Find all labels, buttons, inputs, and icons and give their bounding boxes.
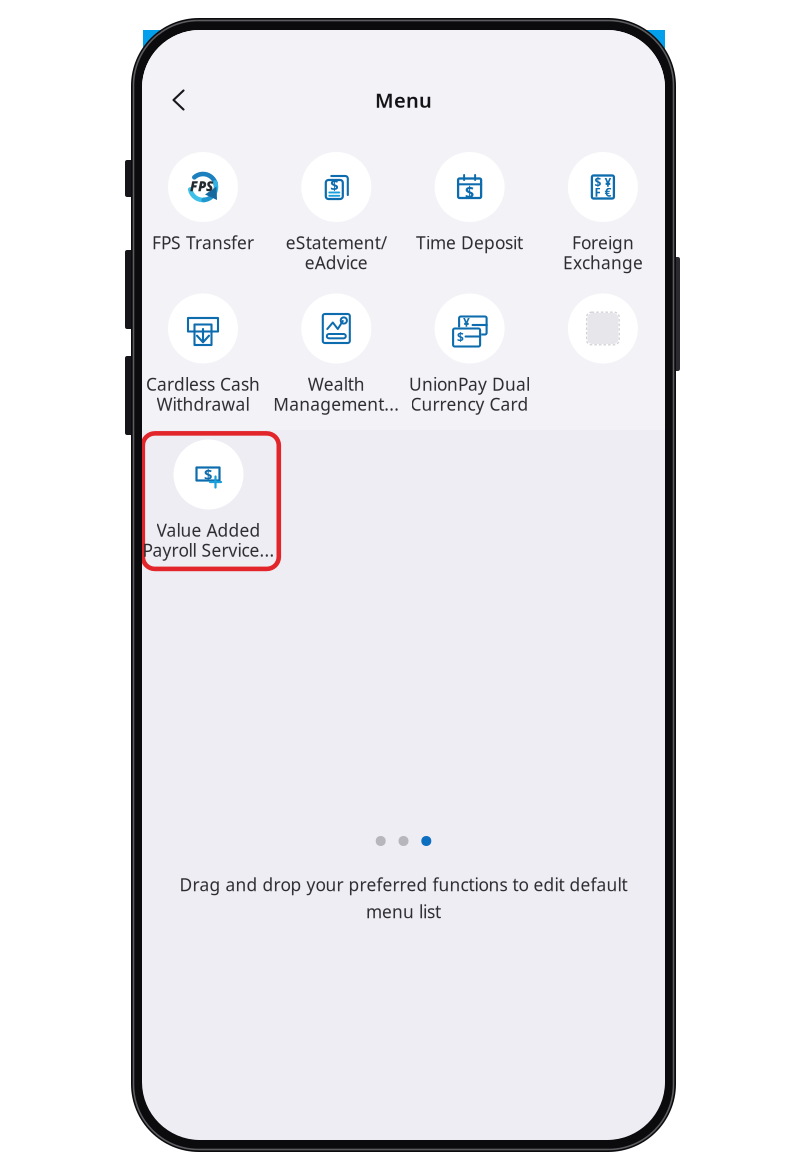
- staticText: ¥: [463, 314, 470, 330]
- staticText: eStatement/: [286, 231, 387, 254]
- staticText: €: [604, 184, 611, 200]
- staticText: Value Added: [156, 518, 260, 541]
- staticText: $: [204, 464, 212, 484]
- button[interactable]: FPS: [136, 152, 269, 274]
- staticText: $: [594, 174, 601, 190]
- staticText: UnionPay Dual: [409, 372, 530, 395]
- staticText: Time Deposit: [416, 231, 523, 254]
- staticText: Withdrawal: [156, 392, 249, 415]
- button[interactable]: $: [270, 152, 403, 274]
- staticText: ¥: [604, 174, 611, 190]
- staticText: Currency Card: [411, 392, 529, 415]
- staticText: Wealth: [308, 372, 365, 395]
- staticText: FPS Transfer: [152, 231, 254, 254]
- button[interactable]: $: [403, 152, 536, 274]
- staticText: menu list: [366, 900, 441, 923]
- staticText: $: [457, 329, 464, 345]
- staticText: $: [465, 181, 474, 202]
- button[interactable]: Cardless Cash: [136, 293, 269, 415]
- staticText: Payroll Service...: [142, 538, 274, 561]
- staticText: Foreign: [572, 231, 634, 254]
- staticText: $: [330, 175, 338, 194]
- staticText: Menu: [375, 87, 432, 113]
- staticText: Exchange: [563, 251, 643, 274]
- staticText: FPS: [190, 177, 213, 195]
- button[interactable]: ¥: [403, 293, 536, 415]
- button[interactable]: $: [536, 152, 669, 274]
- staticText: eAdvice: [305, 251, 368, 274]
- button[interactable]: Wealth: [270, 293, 403, 415]
- staticText: Cardless Cash: [146, 372, 260, 395]
- staticText: Management...: [273, 392, 399, 415]
- button[interactable]: $: [142, 439, 275, 561]
- staticText: F: [594, 184, 601, 200]
- staticText: Drag and drop your preferred functions t…: [179, 873, 627, 896]
- button[interactable]: Back: [158, 79, 200, 121]
